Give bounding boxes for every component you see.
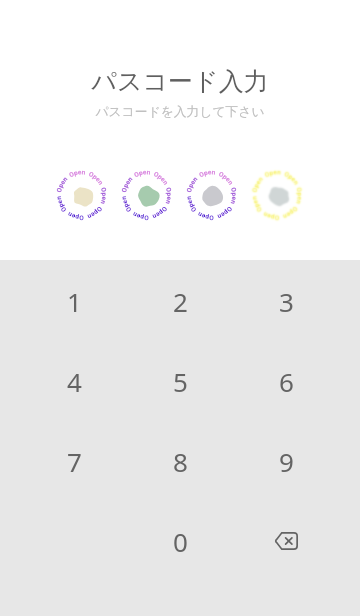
staticText: 7 bbox=[67, 444, 82, 479]
staticText: 9 bbox=[279, 444, 294, 479]
button[interactable]: 4 bbox=[21, 341, 127, 421]
staticText: 5 bbox=[173, 364, 188, 399]
button[interactable]: 3 bbox=[233, 261, 339, 341]
button[interactable]: 1 bbox=[21, 261, 127, 341]
button[interactable]: 2 bbox=[127, 261, 233, 341]
button[interactable]: 6 bbox=[233, 341, 339, 421]
staticText: 8 bbox=[173, 444, 188, 479]
button[interactable]: Backspace bbox=[233, 501, 339, 581]
button[interactable]: 7 bbox=[21, 421, 127, 501]
staticText: 4 bbox=[67, 364, 82, 399]
staticText: パスコードを入力して下さい bbox=[95, 104, 265, 120]
button[interactable]: 5 bbox=[127, 341, 233, 421]
button[interactable]: 0 bbox=[127, 501, 233, 581]
staticText: 0 bbox=[173, 524, 188, 559]
staticText: 6 bbox=[279, 364, 294, 399]
staticText: 1 bbox=[67, 284, 82, 319]
staticText: パスコード入力 bbox=[91, 66, 269, 97]
button[interactable]: 8 bbox=[127, 421, 233, 501]
button[interactable]: 9 bbox=[233, 421, 339, 501]
staticText: 3 bbox=[279, 284, 294, 319]
staticText: 2 bbox=[173, 284, 188, 319]
